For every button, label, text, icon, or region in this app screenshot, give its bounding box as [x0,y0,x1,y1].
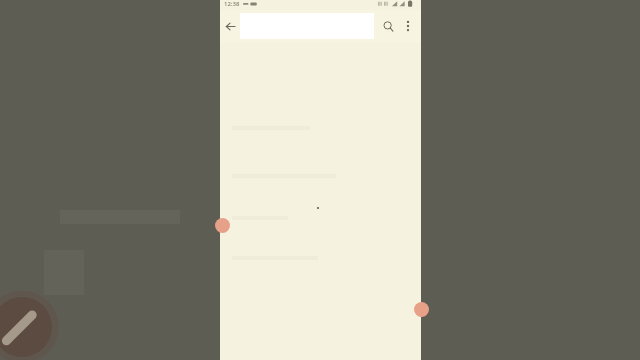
button[interactable]: Back [220,16,240,36]
button[interactable]: Search [378,16,398,36]
button[interactable]: More options [398,16,418,36]
staticText: 12:38 [224,0,240,8]
